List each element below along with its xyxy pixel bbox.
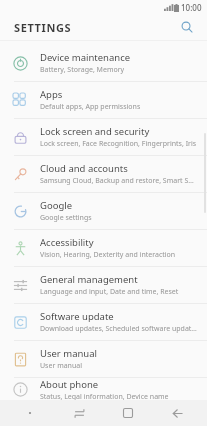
button[interactable]: Software update (0, 304, 207, 341)
staticText: Cloud and accounts (40, 162, 128, 175)
staticText: Lock screen and security (40, 125, 150, 138)
staticText: Samsung Cloud, Backup and restore, Smart… (40, 176, 197, 186)
staticText: Default apps, App permissions (40, 102, 141, 112)
staticText: Google settings (40, 213, 92, 223)
button[interactable]: Apps (0, 82, 207, 119)
button[interactable]: Search (177, 17, 197, 37)
staticText: General management (40, 273, 138, 286)
button[interactable]: Device maintenance (0, 45, 207, 82)
staticText: Apps (40, 88, 63, 101)
staticText: User manual (40, 361, 82, 371)
button[interactable]: Back (164, 400, 190, 426)
button[interactable]: Accessibility (0, 230, 207, 267)
button[interactable]: Cloud and accounts (0, 156, 207, 193)
staticText: About phone (40, 378, 99, 391)
staticText: Download updates, Scheduled software upd… (40, 324, 197, 334)
button[interactable]: Lock screen and security (0, 119, 207, 156)
staticText: Accessibility (40, 236, 94, 249)
staticText: User manual (40, 347, 97, 360)
staticText: Software update (40, 310, 114, 323)
staticText: Battery, Storage, Memory (40, 65, 125, 75)
staticText: SETTINGS (14, 20, 72, 35)
button[interactable]: Home (115, 400, 141, 426)
staticText: 10:00 (181, 2, 202, 13)
button[interactable]: Menu (17, 400, 43, 426)
staticText: Google (40, 199, 73, 212)
button[interactable]: Google (0, 193, 207, 230)
staticText: Language and input, Date and time, Reset (40, 287, 179, 297)
staticText: Lock screen, Face Recognition, Fingerpri… (40, 139, 197, 149)
staticText: Device maintenance (40, 51, 131, 64)
button[interactable]: General management (0, 267, 207, 304)
staticText: Vision, Hearing, Dexterity and interacti… (40, 250, 176, 260)
button[interactable]: Recents (66, 400, 92, 426)
button[interactable]: User manual (0, 341, 207, 378)
staticText: Status, Legal information, Device name (40, 392, 169, 400)
button[interactable]: About phone (0, 378, 207, 400)
